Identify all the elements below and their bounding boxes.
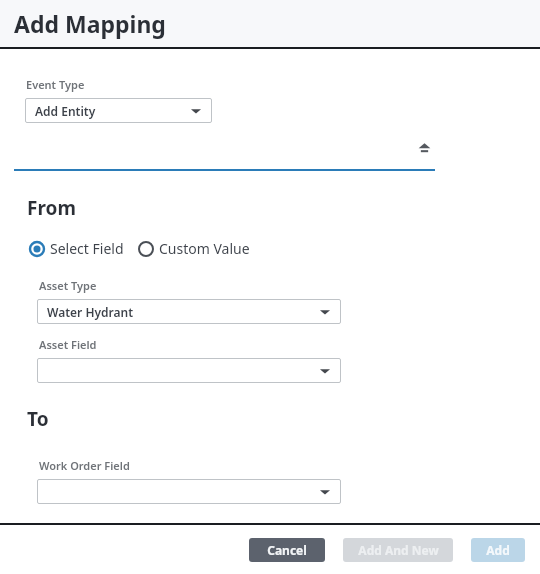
staticText: Add Mapping [14, 8, 166, 39]
button[interactable] [37, 358, 341, 383]
button[interactable]: Custom Value [138, 239, 250, 258]
staticText: Select Field [50, 239, 124, 258]
staticText: Event Type [26, 77, 85, 92]
button[interactable]: Water Hydrant [37, 299, 341, 324]
button[interactable]: Select Field [29, 239, 124, 258]
button[interactable]: Add And New [343, 538, 453, 562]
button[interactable]: Add [471, 538, 525, 562]
staticText: Cancel [267, 542, 307, 558]
staticText: Add And New [358, 542, 439, 558]
button[interactable]: Collapse [14, 141, 435, 171]
staticText: Work Order Field [39, 458, 130, 473]
staticText: To [27, 406, 49, 432]
button[interactable] [37, 479, 341, 504]
staticText: Water Hydrant [47, 304, 134, 320]
button[interactable]: Add Entity [25, 98, 212, 123]
staticText: Asset Type [39, 278, 97, 293]
staticText: From [27, 195, 76, 221]
staticText: Add Entity [35, 103, 96, 119]
staticText: Add [486, 542, 510, 558]
staticText: Asset Field [39, 337, 97, 352]
button[interactable]: Cancel [249, 538, 325, 562]
staticText: Custom Value [159, 239, 250, 258]
